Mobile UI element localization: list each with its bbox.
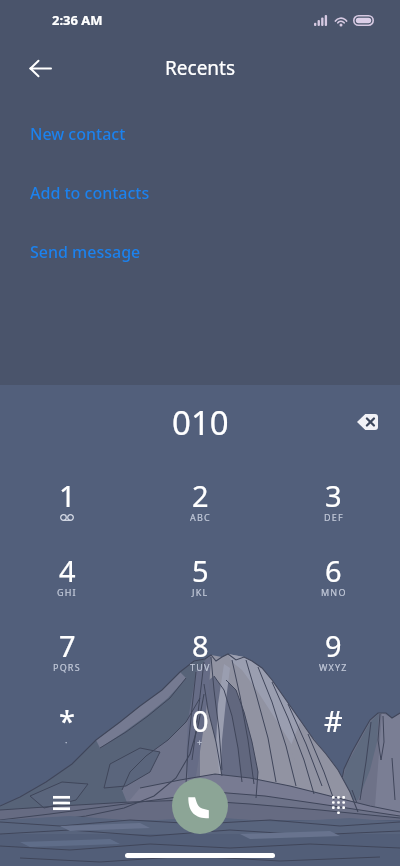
staticText: 5 <box>192 551 209 590</box>
button[interactable]: 7 <box>0 609 134 684</box>
button[interactable]: Add to contacts <box>0 163 400 222</box>
staticText: # <box>324 701 343 740</box>
button[interactable]: # <box>267 684 400 759</box>
button[interactable]: Backspace <box>345 400 389 444</box>
staticText: 010 <box>172 400 229 445</box>
button[interactable]: 6 <box>267 534 400 609</box>
button[interactable]: Back <box>16 44 64 92</box>
staticText: 2 <box>192 476 209 515</box>
button[interactable]: 2 <box>134 459 267 534</box>
staticText: Send message <box>30 241 141 263</box>
button[interactable]: Call <box>172 778 228 834</box>
staticText: TUV <box>190 661 211 673</box>
staticText: MNO <box>321 586 347 598</box>
button[interactable]: 8 <box>134 609 267 684</box>
button[interactable]: 9 <box>267 609 400 684</box>
button[interactable]: 1 <box>0 459 134 534</box>
staticText: WXYZ <box>319 661 348 673</box>
staticText: 4 <box>59 551 76 590</box>
button[interactable]: Send message <box>0 222 400 281</box>
staticText: + <box>197 736 204 748</box>
staticText: PQRS <box>53 661 81 673</box>
button[interactable]: Dialpad <box>315 781 363 829</box>
staticText: 3 <box>325 476 342 515</box>
staticText: 0 <box>192 701 209 740</box>
button[interactable]: 0 <box>134 684 267 759</box>
staticText: 9 <box>325 626 342 665</box>
staticText: 8 <box>192 626 209 665</box>
button[interactable]: New contact <box>0 104 400 163</box>
button[interactable]: 3 <box>267 459 400 534</box>
staticText: 7 <box>59 626 76 665</box>
button[interactable]: 4 <box>0 534 134 609</box>
button[interactable]: * <box>0 684 134 759</box>
staticText: 6 <box>325 551 342 590</box>
staticText: New contact <box>30 123 126 145</box>
staticText: GHI <box>57 586 77 598</box>
staticText: DEF <box>324 511 344 523</box>
button[interactable]: Menu <box>37 779 85 827</box>
staticText: 1 <box>59 476 76 515</box>
staticText: ABC <box>190 511 211 523</box>
button[interactable]: 5 <box>134 534 267 609</box>
staticText: Add to contacts <box>30 182 150 204</box>
staticText: JKL <box>192 586 209 598</box>
staticText: 2:36 AM <box>52 11 103 29</box>
staticText: Recents <box>165 55 236 81</box>
staticText: * <box>59 701 75 740</box>
staticText: · <box>65 736 69 748</box>
